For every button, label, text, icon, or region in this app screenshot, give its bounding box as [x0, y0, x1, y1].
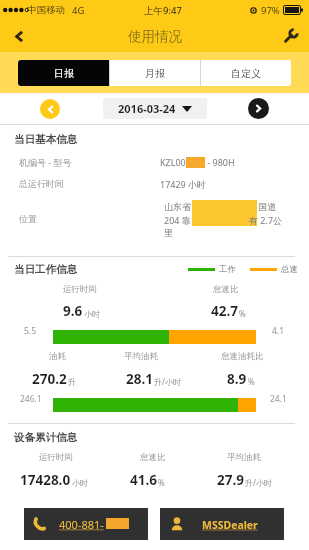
staticText: 400-881-	[59, 517, 104, 532]
staticText: 中国移动	[27, 4, 65, 16]
staticText: 运行时间	[63, 284, 97, 295]
staticText: 28.1	[126, 370, 153, 388]
staticText: 山东省	[164, 201, 191, 212]
staticText: %	[239, 308, 246, 319]
button[interactable]: Settings	[271, 20, 309, 52]
staticText: 上午9:47	[144, 4, 182, 17]
staticText: 246.1	[20, 393, 42, 405]
staticText: 设备累计信息	[14, 431, 77, 444]
staticText: 位置	[19, 213, 37, 224]
staticText: 使用情况	[128, 28, 182, 45]
staticText: 小时	[84, 309, 100, 319]
button[interactable]: 2016-03-24	[103, 98, 207, 119]
staticText: 运行时间	[39, 452, 73, 463]
staticText: 月报	[145, 67, 165, 80]
button[interactable]: Previous day	[40, 99, 60, 119]
staticText: 总运行时间	[19, 178, 64, 189]
button[interactable]: 日报	[18, 60, 109, 86]
staticText: 平均油耗	[124, 351, 158, 362]
staticText: 27.9	[217, 471, 244, 489]
staticText: 工作	[219, 264, 236, 275]
staticText: %	[248, 376, 255, 387]
staticText: 日报	[54, 67, 74, 80]
staticText: 升/小时	[245, 477, 272, 488]
staticText: 有 2.7公	[249, 214, 283, 226]
staticText: 41.6	[130, 471, 157, 489]
staticText: 8.9	[227, 370, 247, 388]
button[interactable]: Back	[0, 20, 38, 52]
staticText: 机编号 - 型号	[19, 156, 72, 168]
staticText: 9.6	[63, 302, 83, 320]
staticText: 怠速油耗比	[221, 351, 264, 362]
staticText: 5.5	[24, 325, 37, 337]
button[interactable]: 400-881-	[24, 508, 148, 540]
staticText: MSSDealer	[202, 518, 258, 532]
staticText: 油耗	[49, 351, 66, 362]
button[interactable]: 月报	[110, 60, 200, 86]
button[interactable]: MSSDealer	[160, 508, 284, 540]
staticText: 平均油耗	[227, 452, 261, 463]
staticText: 升/小时	[154, 376, 181, 387]
staticText: 24.1	[270, 393, 287, 405]
staticText: 当日基本信息	[14, 133, 77, 146]
staticText: 里	[164, 227, 173, 238]
staticText: 总速	[281, 264, 298, 275]
staticText: 17428.0	[20, 471, 71, 489]
staticText: %	[158, 477, 165, 488]
button[interactable]: 自定义	[201, 60, 291, 86]
staticText: 自定义	[231, 67, 261, 80]
staticText: KZL00	[160, 156, 186, 168]
staticText: 42.7	[211, 302, 238, 320]
staticText: 4G	[72, 4, 85, 17]
staticText: 97%	[261, 4, 280, 17]
staticText: 怠速比	[213, 284, 239, 295]
staticText: 17429 小时	[160, 178, 207, 190]
staticText: - 980H	[205, 156, 235, 168]
staticText: 4.1	[272, 325, 285, 337]
staticText: 2016-03-24	[118, 101, 176, 116]
button[interactable]: Next day	[248, 98, 269, 119]
staticText: 小时	[72, 478, 88, 488]
staticText: 当日工作信息	[14, 263, 77, 276]
staticText: 204 靠	[164, 214, 191, 226]
staticText: 270.2	[32, 370, 67, 388]
staticText: 怠速比	[140, 452, 166, 463]
staticText: 升	[68, 377, 76, 387]
staticText: 国道	[258, 201, 276, 212]
